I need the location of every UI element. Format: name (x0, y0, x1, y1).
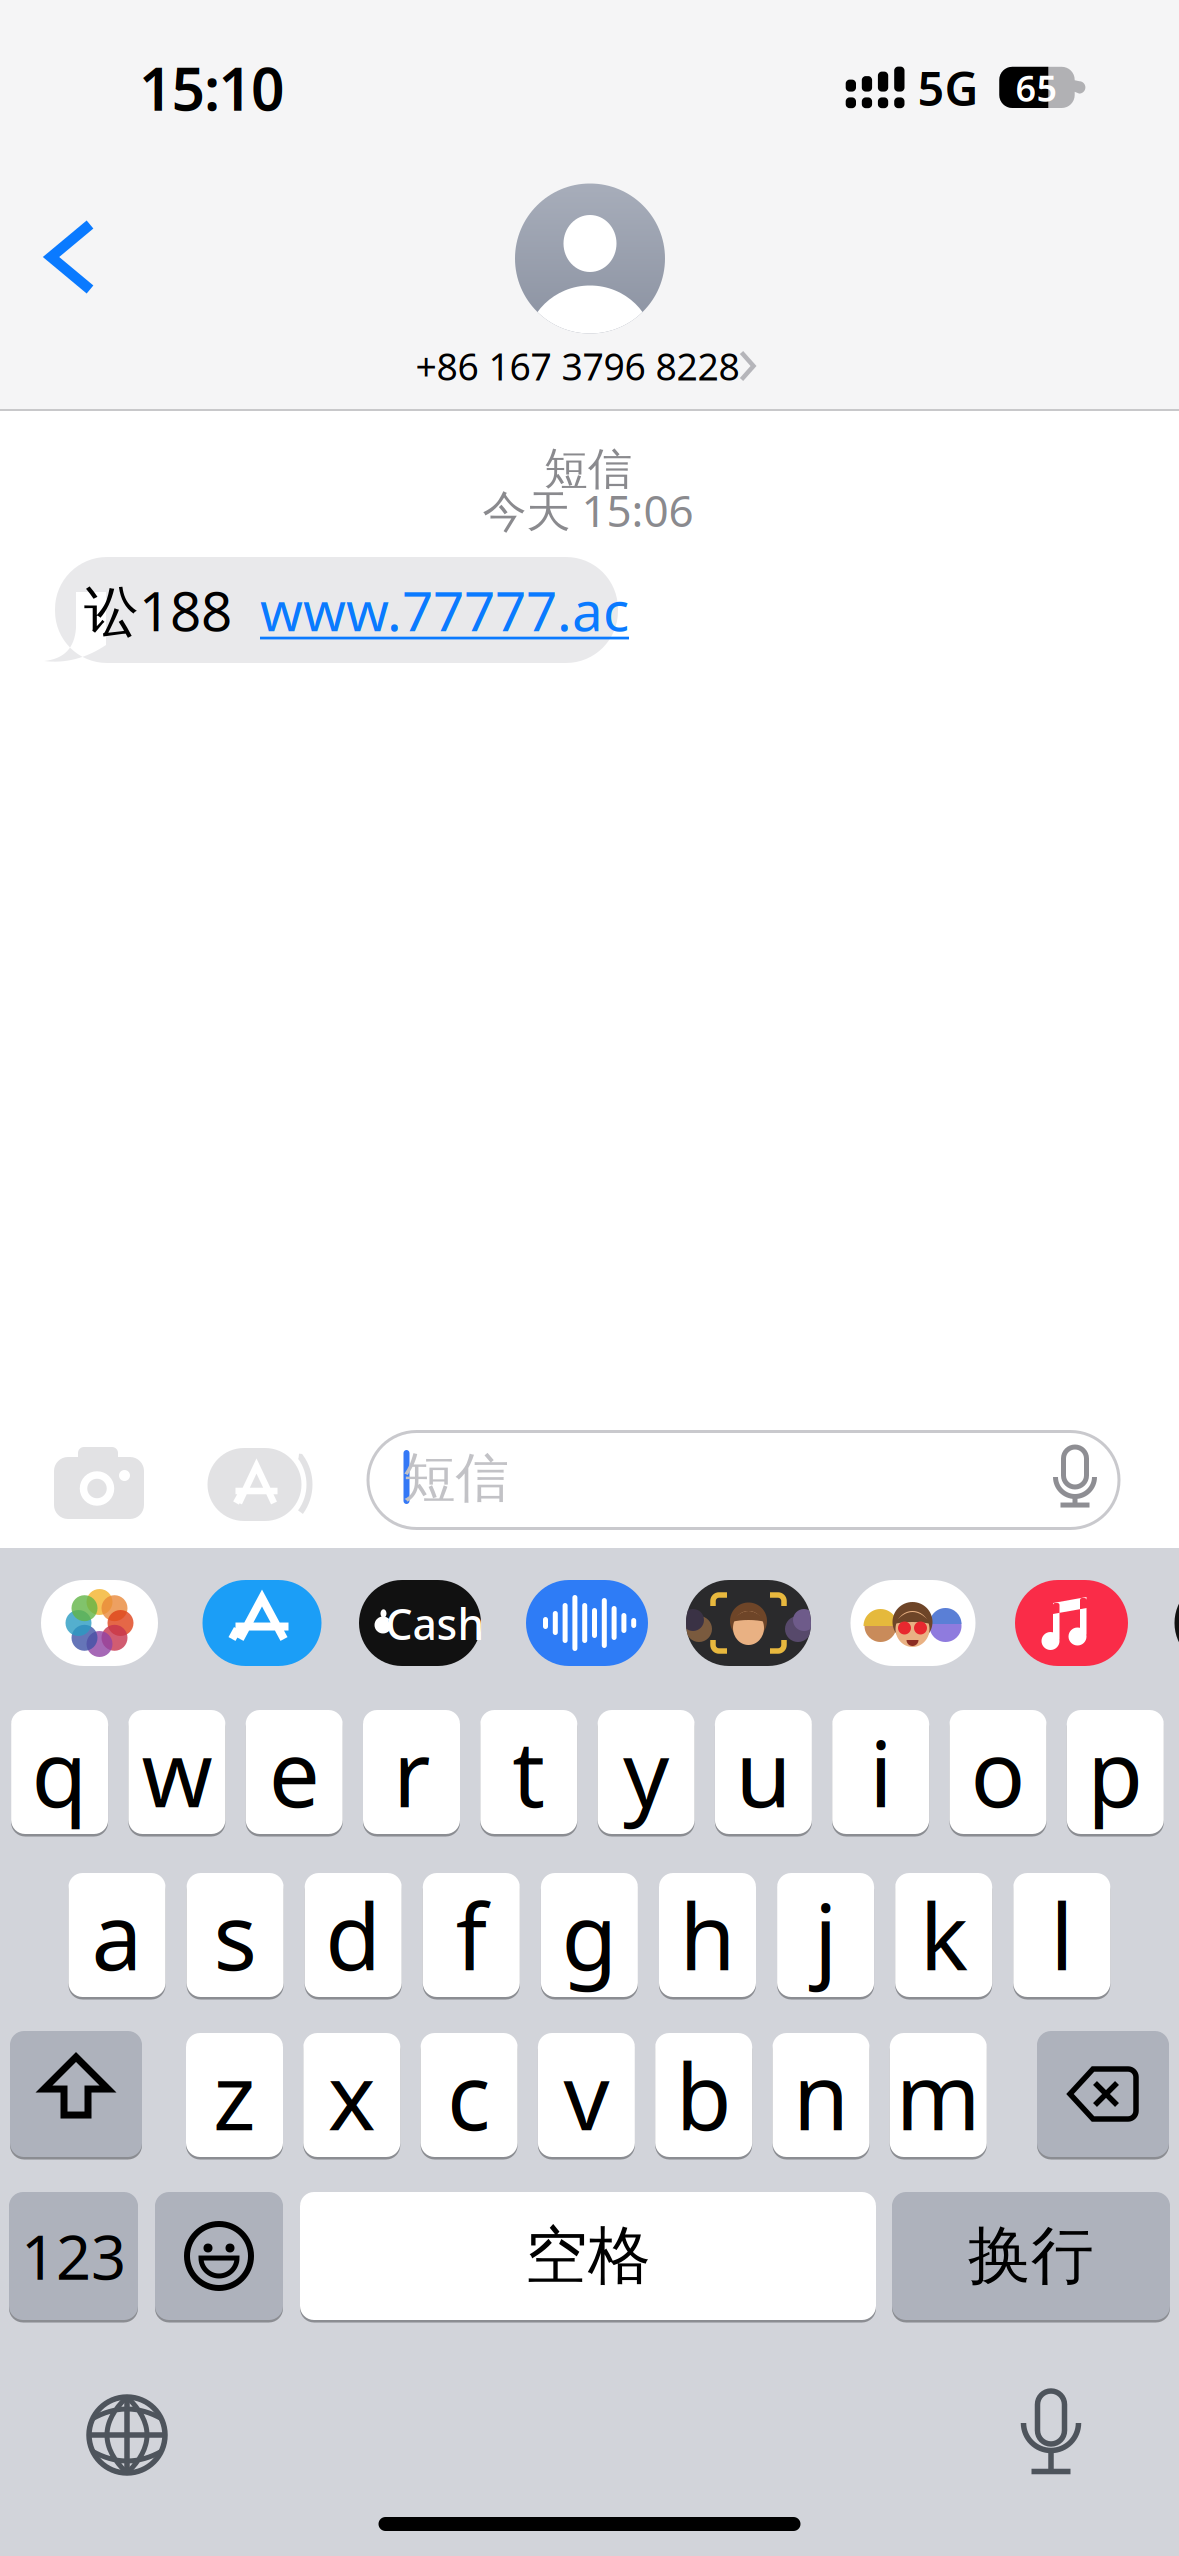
button[interactable]: Back (43, 220, 99, 293)
staticText: t (512, 1712, 545, 1832)
staticText: m (896, 2035, 981, 2155)
staticText: q (32, 1712, 88, 1832)
button[interactable]: w (128, 1710, 225, 1834)
button[interactable]: Photos (41, 1580, 158, 1666)
staticText: +86 167 3796 8228 (415, 341, 739, 391)
button[interactable]: r (363, 1710, 460, 1834)
button[interactable]: s (187, 1873, 284, 1997)
button[interactable]: Shift (10, 2031, 142, 2157)
staticText: b (676, 2035, 732, 2155)
button[interactable]: Contact +86 167 3796 8228 (404, 181, 774, 396)
staticText: p (1087, 1712, 1143, 1832)
staticText: n (793, 2035, 849, 2155)
button[interactable]: Music (1015, 1580, 1128, 1666)
button[interactable]: m (890, 2033, 987, 2157)
staticText: h (679, 1875, 735, 1995)
button[interactable]: Dictate (1051, 1447, 1098, 1507)
staticText: 讼188 (84, 574, 260, 646)
button[interactable]: Apple Cash (359, 1580, 481, 1666)
staticText: 65 (1015, 64, 1057, 112)
staticText: j (814, 1875, 837, 1995)
button[interactable]: Camera (54, 1447, 144, 1519)
button[interactable]: Memoji (686, 1580, 811, 1666)
button[interactable]: h (659, 1873, 756, 1997)
staticText: 换行 (968, 2217, 1094, 2294)
staticText: Cash (385, 1595, 484, 1652)
button[interactable]: e (246, 1710, 343, 1834)
staticText: c (447, 2035, 491, 2155)
staticText: 短信 (544, 442, 632, 496)
staticText: r (393, 1712, 430, 1832)
button[interactable]: Emoji (155, 2192, 283, 2320)
staticText: o (970, 1712, 1025, 1832)
staticText: v (563, 2035, 609, 2155)
staticText: z (213, 2035, 256, 2155)
button[interactable]: Voice (526, 1580, 648, 1666)
staticText: www.77777.ac (260, 574, 629, 646)
staticText: e (269, 1712, 320, 1832)
button[interactable]: g (541, 1873, 638, 1997)
staticText: k (920, 1875, 968, 1995)
button[interactable]: n (772, 2033, 869, 2157)
button[interactable]: App Store (202, 1580, 321, 1666)
button[interactable]: c (421, 2033, 518, 2157)
staticText: a (91, 1875, 142, 1995)
button[interactable]: Delete (1037, 2031, 1169, 2157)
button[interactable]: k (895, 1873, 992, 1997)
button[interactable]: f (423, 1873, 520, 1997)
button[interactable]: Numbers (9, 2192, 138, 2320)
button[interactable]: q (11, 1710, 108, 1834)
button[interactable]: i (832, 1710, 929, 1834)
button[interactable]: Apps (207, 1448, 322, 1521)
button[interactable]: d (305, 1873, 402, 1997)
button[interactable]: Link www.77777.ac (260, 574, 629, 646)
button[interactable]: o (949, 1710, 1046, 1834)
staticText: y (623, 1712, 669, 1832)
staticText: l (1050, 1875, 1073, 1995)
button[interactable]: y (598, 1710, 695, 1834)
button[interactable]: b (655, 2033, 752, 2157)
button[interactable]: z (186, 2033, 283, 2157)
button[interactable]: p (1067, 1710, 1164, 1834)
staticText: s (214, 1875, 257, 1995)
button[interactable]: Return (892, 2192, 1170, 2320)
staticText: 今天 15:06 (482, 481, 693, 539)
button[interactable]: l (1013, 1873, 1110, 1997)
staticText: i (869, 1712, 892, 1832)
staticText: 15:10 (139, 49, 285, 127)
staticText: 空格 (525, 2217, 651, 2294)
button[interactable]: u (715, 1710, 812, 1834)
staticText: f (456, 1875, 487, 1995)
staticText: u (735, 1712, 791, 1832)
button[interactable]: t (480, 1710, 577, 1834)
staticText: x (328, 2035, 376, 2155)
button[interactable]: Space (300, 2192, 876, 2320)
button[interactable]: v (538, 2033, 635, 2157)
button[interactable]: a (68, 1873, 165, 1997)
staticText: g (561, 1875, 617, 1995)
button[interactable]: j (777, 1873, 874, 1997)
button[interactable]: Dictation (1023, 2391, 1078, 2475)
button[interactable]: Message field (366, 1430, 1120, 1530)
staticText: 短信 (402, 1445, 508, 1511)
staticText: 5G (917, 57, 978, 119)
button[interactable]: Stickers (850, 1580, 975, 1666)
staticText: 123 (21, 2215, 126, 2297)
button[interactable]: Next keyboard (87, 2395, 167, 2475)
staticText: w (141, 1712, 212, 1832)
button[interactable]: x (303, 2033, 400, 2157)
staticText: d (325, 1875, 381, 1995)
